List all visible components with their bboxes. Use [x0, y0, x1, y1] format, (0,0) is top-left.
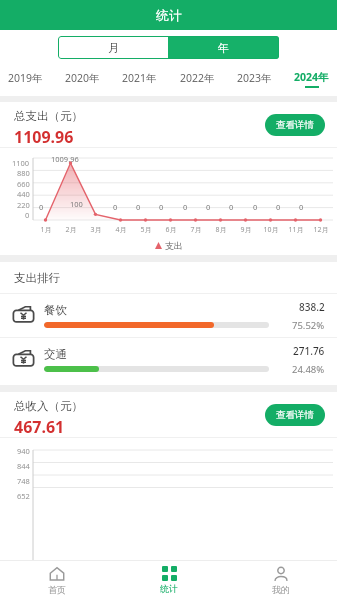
staticText: 838.2 [299, 300, 325, 314]
staticText: 0 [276, 202, 281, 212]
other: 我的 [273, 566, 289, 582]
staticText: 查看详情 [276, 409, 314, 421]
staticText: 年 [218, 41, 229, 55]
staticText: 1月 [40, 225, 52, 235]
staticText: 1100 [12, 158, 30, 168]
staticText: 652 [17, 491, 30, 501]
button[interactable]: 查看详情 [265, 404, 325, 426]
staticText: 0 [113, 202, 118, 212]
staticText: 75.52% [292, 319, 325, 332]
staticText: 3月 [90, 225, 102, 235]
staticText: 0 [25, 210, 30, 220]
staticText: 100 [70, 199, 83, 209]
button[interactable]: 统计 [113, 560, 225, 600]
staticText: 0 [183, 202, 188, 212]
staticText: 支出 [165, 240, 183, 251]
staticText: 统计 [160, 583, 178, 594]
staticText: 统计 [156, 7, 182, 23]
button[interactable]: 我的 [225, 560, 337, 600]
staticText: 0 [159, 202, 164, 212]
staticText: 首页 [48, 584, 66, 595]
staticText: 0 [206, 202, 211, 212]
button[interactable]: 交通 [0, 338, 337, 381]
staticText: 0 [39, 202, 44, 212]
staticText: 940 [17, 446, 30, 456]
staticText: 2022年 [180, 71, 215, 85]
other: 首页 [49, 566, 65, 582]
staticText: 0 [136, 202, 141, 212]
staticText: 467.61 [14, 416, 65, 437]
staticText: 7月 [190, 225, 202, 235]
staticText: 1009.96 [51, 154, 79, 164]
staticText: 5月 [140, 225, 152, 235]
button[interactable]: 月 [58, 36, 168, 59]
staticText: 总支出（元） [14, 109, 83, 123]
button[interactable]: 餐饮 [0, 294, 337, 337]
staticText: 660 [17, 179, 30, 189]
staticText: 查看详情 [276, 119, 314, 131]
button[interactable]: 年 [168, 36, 279, 59]
staticText: 880 [17, 168, 30, 178]
staticText: 748 [17, 476, 30, 486]
staticText: 271.76 [293, 344, 325, 358]
button[interactable]: 查看详情 [265, 114, 325, 136]
staticText: 交通 [44, 347, 67, 361]
button[interactable]: 首页 [0, 560, 113, 600]
button[interactable]: 2019年 [4, 69, 47, 89]
button[interactable]: 2022年 [176, 69, 219, 89]
staticText: 0 [229, 202, 234, 212]
staticText: 支出排行 [14, 271, 60, 285]
staticText: 总收入（元） [14, 399, 83, 413]
staticText: 2月 [65, 225, 77, 235]
staticText: 2019年 [8, 71, 43, 85]
staticText: 24.48% [292, 363, 325, 376]
staticText: 4月 [115, 225, 127, 235]
staticText: 2021年 [122, 71, 157, 85]
staticText: 2024年 [294, 70, 329, 84]
button[interactable]: 2021年 [118, 69, 161, 89]
staticText: 8月 [215, 225, 227, 235]
staticText: 220 [17, 200, 30, 210]
staticText: 餐饮 [44, 303, 67, 317]
staticText: 2023年 [237, 71, 272, 85]
button[interactable]: 2024年 [290, 68, 333, 90]
button[interactable]: 2023年 [233, 69, 276, 89]
staticText: 6月 [165, 225, 177, 235]
other: 统计 [162, 566, 177, 581]
staticText: 12月 [313, 225, 329, 235]
staticText: 1109.96 [14, 126, 74, 147]
staticText: 0 [299, 202, 304, 212]
button[interactable]: 2020年 [61, 69, 104, 89]
staticText: 11月 [288, 225, 304, 235]
staticText: 0 [253, 202, 258, 212]
staticText: 9月 [240, 225, 252, 235]
staticText: 我的 [272, 584, 290, 595]
staticText: 2020年 [65, 71, 100, 85]
staticText: 440 [17, 189, 30, 199]
staticText: 月 [108, 41, 119, 55]
staticText: 844 [17, 461, 30, 471]
staticText: 10月 [263, 225, 279, 235]
